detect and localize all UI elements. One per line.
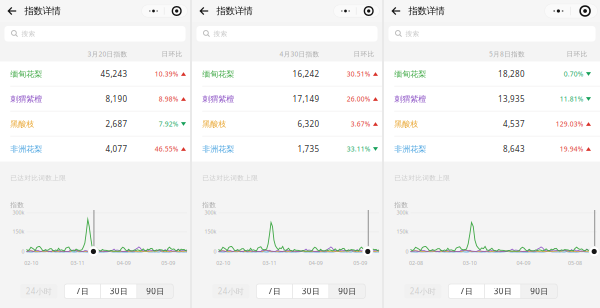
- staticText: 03-10: [463, 259, 477, 267]
- staticText: 4,537: [503, 119, 525, 129]
- staticText: 搜索: [214, 30, 228, 38]
- button[interactable]: 非洲花梨: [0, 136, 190, 161]
- staticText: 缅甸花梨: [394, 69, 426, 79]
- button[interactable]: 24小时: [20, 284, 57, 298]
- staticText: 已达对比词数上限: [394, 174, 450, 182]
- staticText: 90日: [338, 286, 356, 296]
- button[interactable]: 缅甸花梨: [0, 61, 190, 86]
- staticText: 指数: [394, 201, 408, 209]
- staticText: 02-10: [24, 259, 38, 267]
- button[interactable]: 30日: [485, 284, 521, 298]
- staticText: 02-08: [409, 259, 423, 267]
- staticText: 7日: [76, 286, 89, 296]
- staticText: 3.67%: [351, 120, 371, 128]
- staticText: 129.03%: [556, 120, 584, 128]
- button[interactable]: 更多: [141, 0, 187, 22]
- button[interactable]: 刺猬紫檀: [0, 86, 190, 111]
- button[interactable]: 刺猬紫檀: [192, 86, 382, 111]
- button[interactable]: 搜索: [388, 26, 595, 41]
- staticText: 指数详情: [216, 5, 252, 17]
- staticText: 指数: [10, 201, 24, 209]
- staticText: 黑酸枝: [10, 119, 34, 129]
- staticText: 18,280: [498, 69, 525, 79]
- staticText: 24小时: [218, 286, 244, 296]
- staticText: 45,243: [100, 69, 127, 79]
- staticText: 16,242: [292, 69, 319, 79]
- staticText: 300k: [12, 209, 24, 216]
- staticText: 04-09: [309, 259, 323, 267]
- staticText: 03-11: [262, 259, 276, 267]
- staticText: 指数详情: [408, 5, 444, 17]
- staticText: 搜索: [406, 30, 420, 38]
- staticText: 0: [21, 248, 24, 255]
- button[interactable]: 搜索: [4, 26, 185, 41]
- staticText: 7日: [268, 286, 281, 296]
- button[interactable]: 返回: [195, 0, 213, 22]
- staticText: 150k: [396, 228, 408, 235]
- button[interactable]: 24小时: [404, 284, 441, 298]
- button[interactable]: 返回: [387, 0, 405, 22]
- staticText: 刺猬紫檀: [10, 94, 42, 104]
- button[interactable]: 90日: [329, 284, 365, 298]
- staticText: 已达对比词数上限: [202, 174, 258, 182]
- button[interactable]: 搜索: [196, 26, 377, 41]
- staticText: 4,077: [105, 144, 127, 154]
- button[interactable]: 黑酸枝: [0, 111, 190, 136]
- staticText: 已达对比词数上限: [10, 174, 66, 182]
- button[interactable]: 90日: [521, 284, 557, 298]
- button[interactable]: 返回: [3, 0, 21, 22]
- staticText: 非洲花梨: [202, 144, 234, 154]
- staticText: 13,935: [498, 94, 525, 104]
- button[interactable]: 7日: [64, 284, 100, 298]
- button[interactable]: 黑酸枝: [384, 111, 600, 136]
- staticText: 非洲花梨: [10, 144, 42, 154]
- button[interactable]: 30日: [101, 284, 137, 298]
- staticText: 04-09: [516, 259, 530, 267]
- staticText: 0: [405, 248, 408, 255]
- staticText: 搜索: [22, 30, 36, 38]
- button[interactable]: 90日: [137, 284, 173, 298]
- button[interactable]: 7日: [448, 284, 484, 298]
- staticText: 300k: [396, 209, 408, 216]
- staticText: 90日: [146, 286, 164, 296]
- staticText: 刺猬紫檀: [394, 94, 426, 104]
- staticText: 05-09: [161, 259, 175, 267]
- staticText: 日环比: [161, 50, 182, 58]
- staticText: 7日: [460, 286, 473, 296]
- staticText: 90日: [530, 286, 548, 296]
- staticText: 指数详情: [24, 5, 60, 17]
- button[interactable]: 7日: [256, 284, 292, 298]
- staticText: 05-09: [353, 259, 367, 267]
- staticText: 日环比: [353, 50, 374, 58]
- staticText: 指数: [202, 201, 216, 209]
- staticText: 1,735: [297, 144, 319, 154]
- staticText: 24小时: [410, 286, 436, 296]
- staticText: 2,687: [105, 119, 127, 129]
- staticText: 30.51%: [347, 70, 371, 78]
- button[interactable]: 刺猬紫檀: [384, 86, 600, 111]
- staticText: 24小时: [26, 286, 52, 296]
- staticText: 46.55%: [155, 145, 179, 153]
- staticText: 33.11%: [347, 145, 371, 153]
- staticText: 11.81%: [560, 95, 584, 103]
- button[interactable]: 非洲花梨: [384, 136, 600, 161]
- staticText: 04-09: [117, 259, 131, 267]
- button[interactable]: 黑酸枝: [192, 111, 382, 136]
- button[interactable]: 缅甸花梨: [192, 61, 382, 86]
- staticText: 3月20日指数: [87, 50, 127, 58]
- button[interactable]: 缅甸花梨: [384, 61, 600, 86]
- button[interactable]: 30日: [293, 284, 329, 298]
- staticText: 6,320: [297, 119, 319, 129]
- button[interactable]: 非洲花梨: [192, 136, 382, 161]
- button[interactable]: 更多: [333, 0, 379, 22]
- staticText: 7.92%: [159, 120, 179, 128]
- staticText: 19.94%: [560, 145, 584, 153]
- staticText: 02-10: [216, 259, 230, 267]
- button[interactable]: 24小时: [212, 284, 249, 298]
- staticText: 03-11: [70, 259, 84, 267]
- staticText: 150k: [12, 228, 24, 235]
- button[interactable]: 更多: [545, 0, 597, 22]
- staticText: 5月8日指数: [489, 50, 525, 58]
- staticText: 8,190: [105, 94, 127, 104]
- staticText: 0: [213, 248, 216, 255]
